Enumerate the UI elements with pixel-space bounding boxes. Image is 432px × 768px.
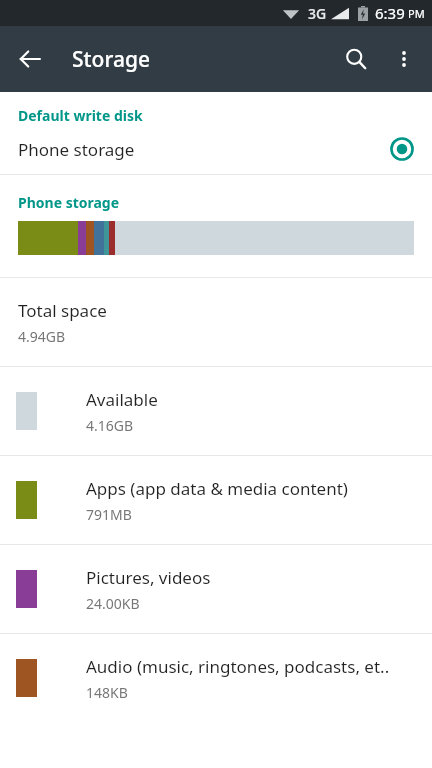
- button[interactable]: Available: [0, 367, 432, 455]
- staticText: Total space: [18, 299, 107, 322]
- staticText: 148KB: [86, 683, 128, 702]
- staticText: Pictures, videos: [86, 566, 211, 589]
- staticText: Phone storage: [18, 138, 135, 161]
- staticText: 3G: [308, 4, 327, 23]
- staticText: Phone storage: [18, 193, 120, 212]
- button[interactable]: Total space: [0, 278, 432, 366]
- staticText: 791MB: [86, 505, 132, 524]
- staticText: Storage: [72, 45, 150, 74]
- staticText: Apps (app data & media content): [86, 477, 348, 500]
- staticText: 6:39: [375, 3, 405, 23]
- staticText: PM: [408, 6, 425, 21]
- button[interactable]: Audio (music, ringtones, podcasts, et..: [0, 634, 432, 722]
- button[interactable]: Back: [6, 35, 54, 83]
- staticText: 4.16GB: [86, 416, 134, 435]
- staticText: 4.94GB: [18, 327, 66, 346]
- staticText: Default write disk: [18, 106, 143, 125]
- button[interactable]: More options: [380, 35, 428, 83]
- staticText: 24.00KB: [86, 594, 140, 613]
- staticText: Audio (music, ringtones, podcasts, et..: [86, 655, 390, 678]
- button[interactable]: Apps (app data & media content): [0, 456, 432, 544]
- button[interactable]: Phone storage: [0, 125, 432, 173]
- button[interactable]: Pictures, videos: [0, 545, 432, 633]
- staticText: Available: [86, 388, 158, 411]
- button[interactable]: Search: [332, 35, 380, 83]
